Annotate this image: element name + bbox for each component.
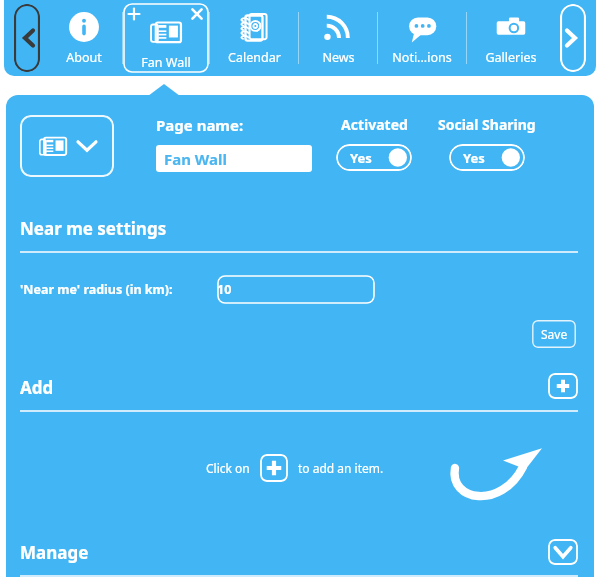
button[interactable]: About bbox=[46, 7, 122, 69]
staticText: News bbox=[322, 49, 355, 66]
staticText: Save bbox=[541, 326, 568, 342]
button[interactable]: Expand Manage bbox=[548, 539, 578, 565]
button[interactable]: Next bbox=[560, 4, 586, 72]
button[interactable]: Social Sharing toggle bbox=[449, 144, 525, 171]
staticText: Fan Wall bbox=[141, 54, 191, 71]
button[interactable]: Galleries bbox=[467, 7, 555, 69]
button[interactable]: Calendar bbox=[210, 7, 298, 69]
button[interactable]: Save bbox=[532, 320, 576, 348]
staticText: to add an item. bbox=[298, 460, 384, 476]
button[interactable]: News bbox=[299, 7, 377, 69]
button[interactable]: Add bbox=[548, 373, 578, 399]
staticText: Social Sharing bbox=[438, 115, 536, 134]
button[interactable]: Noti...ions bbox=[378, 7, 466, 69]
staticText: Noti...ions bbox=[392, 49, 452, 66]
staticText: Near me settings bbox=[20, 217, 167, 240]
staticText: Click on bbox=[206, 460, 250, 476]
button[interactable]: Fan Wall bbox=[156, 145, 312, 172]
staticText: Page name: bbox=[156, 115, 244, 135]
staticText: Galleries bbox=[485, 49, 537, 66]
staticText: Fan Wall bbox=[164, 149, 228, 169]
staticText: 'Near me' radius (in km): bbox=[20, 281, 173, 298]
staticText: Yes bbox=[350, 149, 372, 167]
staticText: 10 bbox=[217, 281, 232, 298]
staticText: Yes bbox=[463, 149, 485, 167]
button[interactable]: Add item bbox=[260, 454, 288, 482]
staticText: About bbox=[66, 49, 102, 66]
button[interactable]: 10 bbox=[205, 275, 375, 304]
button[interactable]: Choose page icon bbox=[20, 115, 114, 177]
staticText: Activated bbox=[341, 115, 408, 134]
staticText: Manage bbox=[20, 541, 89, 564]
button[interactable]: Fan Wall bbox=[123, 3, 209, 73]
staticText: Calendar bbox=[228, 49, 281, 66]
staticText: Add bbox=[20, 376, 54, 399]
button[interactable]: Previous bbox=[14, 4, 40, 72]
button[interactable]: Activated toggle bbox=[336, 144, 412, 171]
